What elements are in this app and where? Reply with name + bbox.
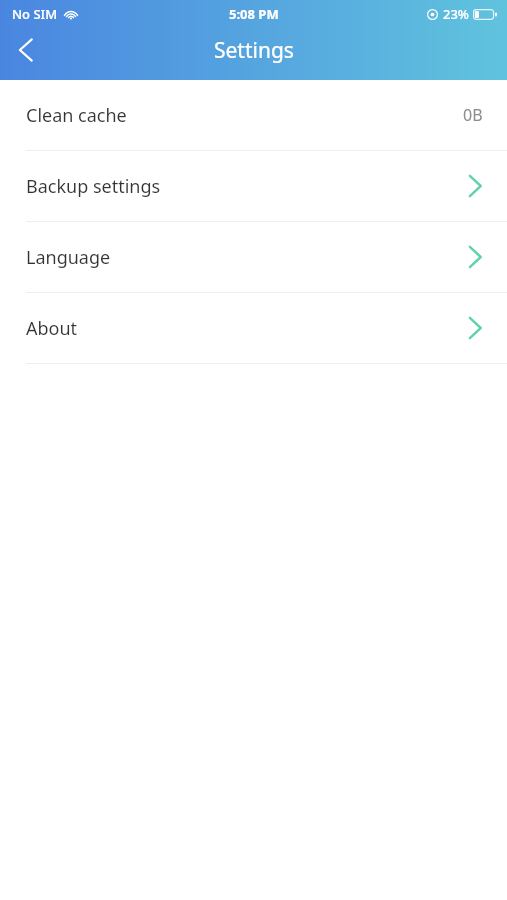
staticText: 23% bbox=[443, 5, 469, 23]
staticText: Backup settings bbox=[26, 174, 161, 199]
staticText: Clean cache bbox=[26, 103, 127, 128]
staticText: 0B bbox=[463, 104, 483, 126]
staticText: Settings bbox=[214, 36, 294, 65]
staticText: Language bbox=[26, 245, 111, 270]
staticText: 5:08 PM bbox=[229, 5, 279, 23]
button[interactable]: Backup settings bbox=[0, 151, 507, 221]
button[interactable]: Clean cache bbox=[0, 80, 507, 150]
button[interactable]: About bbox=[0, 293, 507, 363]
button[interactable]: Language bbox=[0, 222, 507, 292]
button[interactable]: Back bbox=[0, 28, 52, 72]
staticText: About bbox=[26, 316, 78, 341]
staticText: No SIM bbox=[12, 5, 58, 23]
